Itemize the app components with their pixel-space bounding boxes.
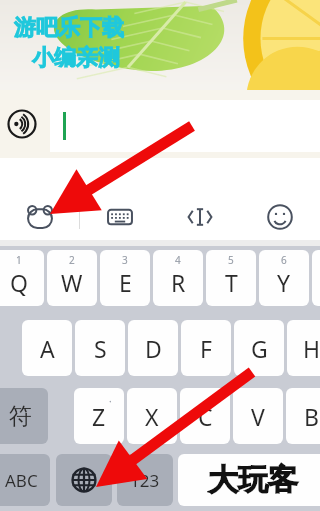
button[interactable]: C [180,388,230,444]
staticText: X [145,401,159,432]
staticText: V [251,401,265,432]
staticText: T [225,267,238,298]
button[interactable]: 2 [47,250,97,306]
staticText: E [119,267,132,298]
button[interactable]: Move cursor [160,194,240,240]
button[interactable]: X [127,388,177,444]
button[interactable]: B [286,388,320,444]
button[interactable]: S [75,320,125,376]
button[interactable]: 6 [259,250,309,306]
staticText: D [145,333,162,364]
staticText: H [303,333,320,364]
button[interactable]: 7 [312,250,320,306]
staticText: R [171,267,186,298]
staticText: 2 [69,253,75,267]
button[interactable]: 符 [0,388,48,444]
staticText: 6 [281,253,287,267]
staticText: Y [277,267,291,298]
button[interactable]: F [181,320,231,376]
button[interactable] [50,100,320,152]
staticText: 小编亲测 [32,44,120,72]
staticText: 1 [16,253,22,267]
staticText: Z [92,401,106,432]
staticText: · [109,394,112,408]
staticText: G [251,333,268,364]
staticText: 3 [122,253,128,267]
staticText: 5 [228,253,234,267]
staticText: C [198,401,213,432]
staticText: B [304,401,319,432]
button[interactable]: 3 [100,250,150,306]
button[interactable]: Switch language [56,454,112,506]
button[interactable]: 123 [117,454,173,506]
button[interactable]: 4 [153,250,203,306]
button[interactable]: A [22,320,72,376]
button[interactable]: 1 [0,250,44,306]
button[interactable]: G [234,320,284,376]
staticText: 符 [9,402,32,431]
button[interactable]: Baidu input [0,194,79,240]
button[interactable]: Keyboard layout [80,194,160,240]
button[interactable]: H [287,320,320,376]
staticText: 游吧乐下载 [14,14,124,42]
staticText: W [61,267,83,298]
button[interactable]: Z [74,388,124,444]
button[interactable]: 5 [206,250,256,306]
button[interactable]: Emoji [240,194,320,240]
staticText: ABC [5,469,38,492]
button[interactable]: Space [178,454,320,506]
staticText: 123 [130,469,160,492]
staticText: 大玩客 [208,461,298,499]
staticText: 4 [175,253,181,267]
button[interactable]: V [233,388,283,444]
staticText: F [200,333,212,364]
staticText: Q [10,267,28,298]
button[interactable]: D [128,320,178,376]
button[interactable]: ABC [0,454,50,506]
button[interactable]: Voice input [0,102,44,146]
staticText: S [94,333,107,364]
staticText: A [40,333,55,364]
